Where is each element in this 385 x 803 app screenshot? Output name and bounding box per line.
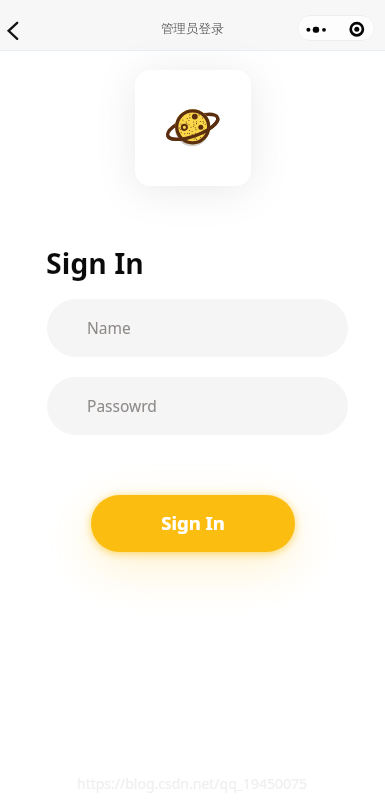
button[interactable]: Back <box>0 13 28 49</box>
staticText: Sign In <box>46 244 144 283</box>
button[interactable]: Menu <box>297 15 375 41</box>
staticText: 管理员登录 <box>161 21 224 37</box>
button[interactable]: Sign In <box>91 495 295 552</box>
staticText: Sign In <box>161 510 225 535</box>
button[interactable]: Name <box>47 299 348 357</box>
button[interactable]: Passowrd <box>47 377 348 435</box>
staticText: https://blog.csdn.net/qq_19450075 <box>77 774 308 793</box>
staticText: Name <box>87 317 131 338</box>
staticText: Passowrd <box>87 395 157 416</box>
